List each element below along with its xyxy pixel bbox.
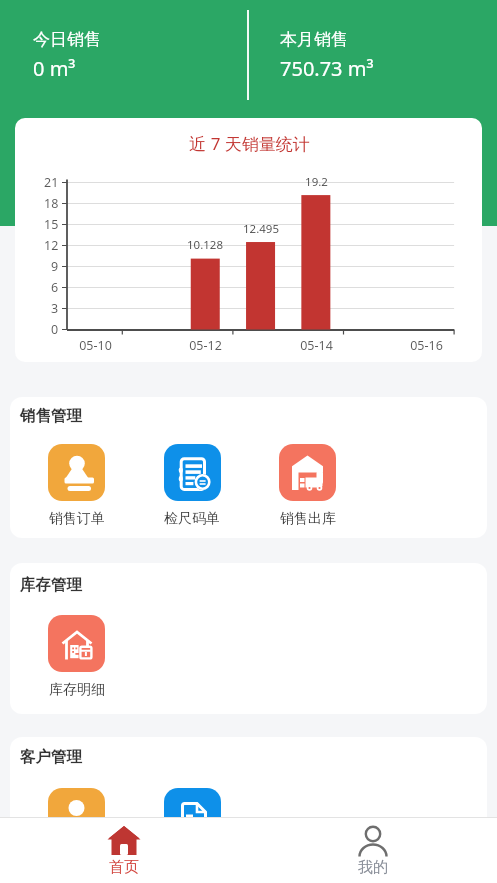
- staticText: 21: [44, 174, 59, 191]
- staticText: 19.2: [305, 174, 328, 190]
- staticText: 库存明细: [49, 681, 105, 699]
- staticText: 15: [44, 216, 59, 233]
- staticText: 销售管理: [20, 406, 82, 426]
- staticText: 9: [51, 258, 59, 275]
- staticText: 12: [44, 237, 59, 254]
- staticText: 销售出库: [280, 510, 336, 528]
- staticText: 05-16: [410, 337, 443, 354]
- staticText: 750.73 m³: [280, 55, 374, 82]
- staticText: 05-10: [79, 337, 112, 354]
- staticText: 12.495: [243, 221, 279, 237]
- staticText: 18: [44, 195, 59, 212]
- staticText: 客户管理: [20, 747, 82, 767]
- staticText: 6: [51, 279, 59, 296]
- staticText: 库存管理: [20, 575, 82, 595]
- staticText: 近 7 天销量统计: [189, 132, 310, 155]
- staticText: 10.128: [187, 237, 223, 253]
- staticText: 本月销售: [280, 29, 348, 50]
- staticText: 05-12: [189, 337, 222, 354]
- staticText: 3: [51, 300, 59, 317]
- staticText: 0: [51, 321, 59, 338]
- staticText: 首页: [109, 858, 139, 877]
- staticText: 今日销售: [33, 29, 101, 50]
- staticText: 我的: [358, 858, 388, 877]
- staticText: 检尺码单: [164, 510, 220, 528]
- staticText: 销售订单: [49, 510, 105, 528]
- staticText: 05-14: [300, 337, 333, 354]
- staticText: 0 m³: [33, 55, 76, 82]
